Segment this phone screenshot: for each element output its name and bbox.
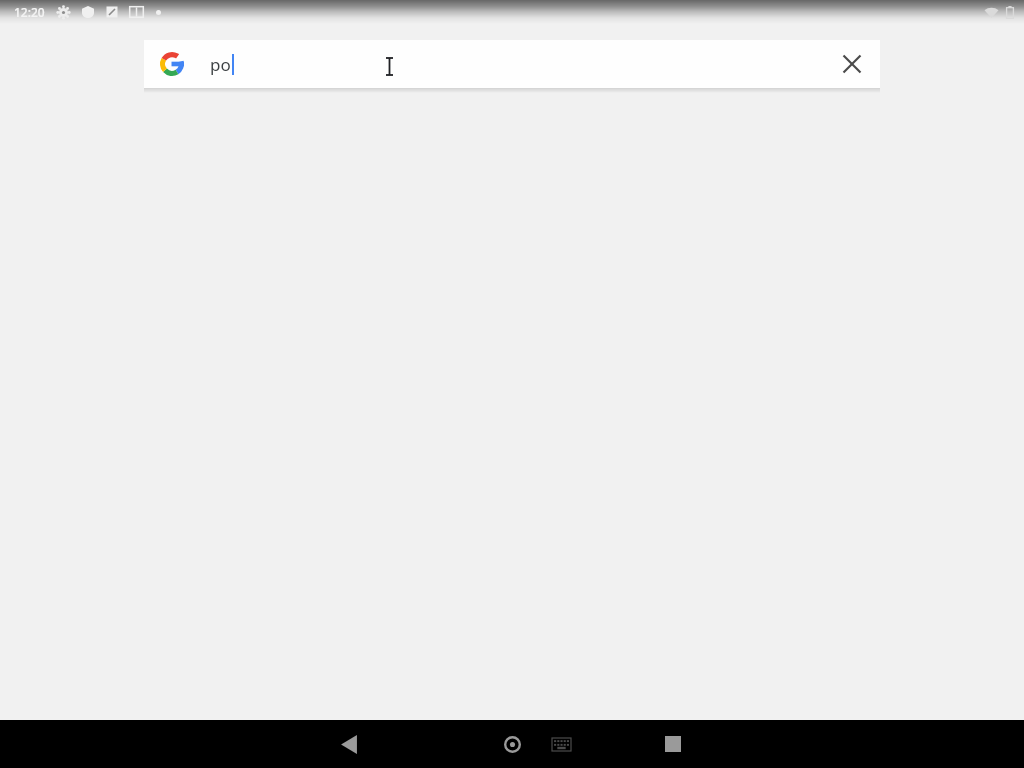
- staticText: po: [210, 53, 231, 76]
- button[interactable]: Home: [488, 720, 536, 768]
- button[interactable]: Recent apps: [649, 720, 697, 768]
- button[interactable]: Google: [144, 40, 880, 88]
- other: Google: [160, 52, 184, 76]
- button[interactable]: Switch keyboard: [543, 726, 579, 762]
- staticText: 12:20: [14, 4, 45, 20]
- button[interactable]: Back: [325, 720, 373, 768]
- button[interactable]: Clear search: [828, 40, 876, 88]
